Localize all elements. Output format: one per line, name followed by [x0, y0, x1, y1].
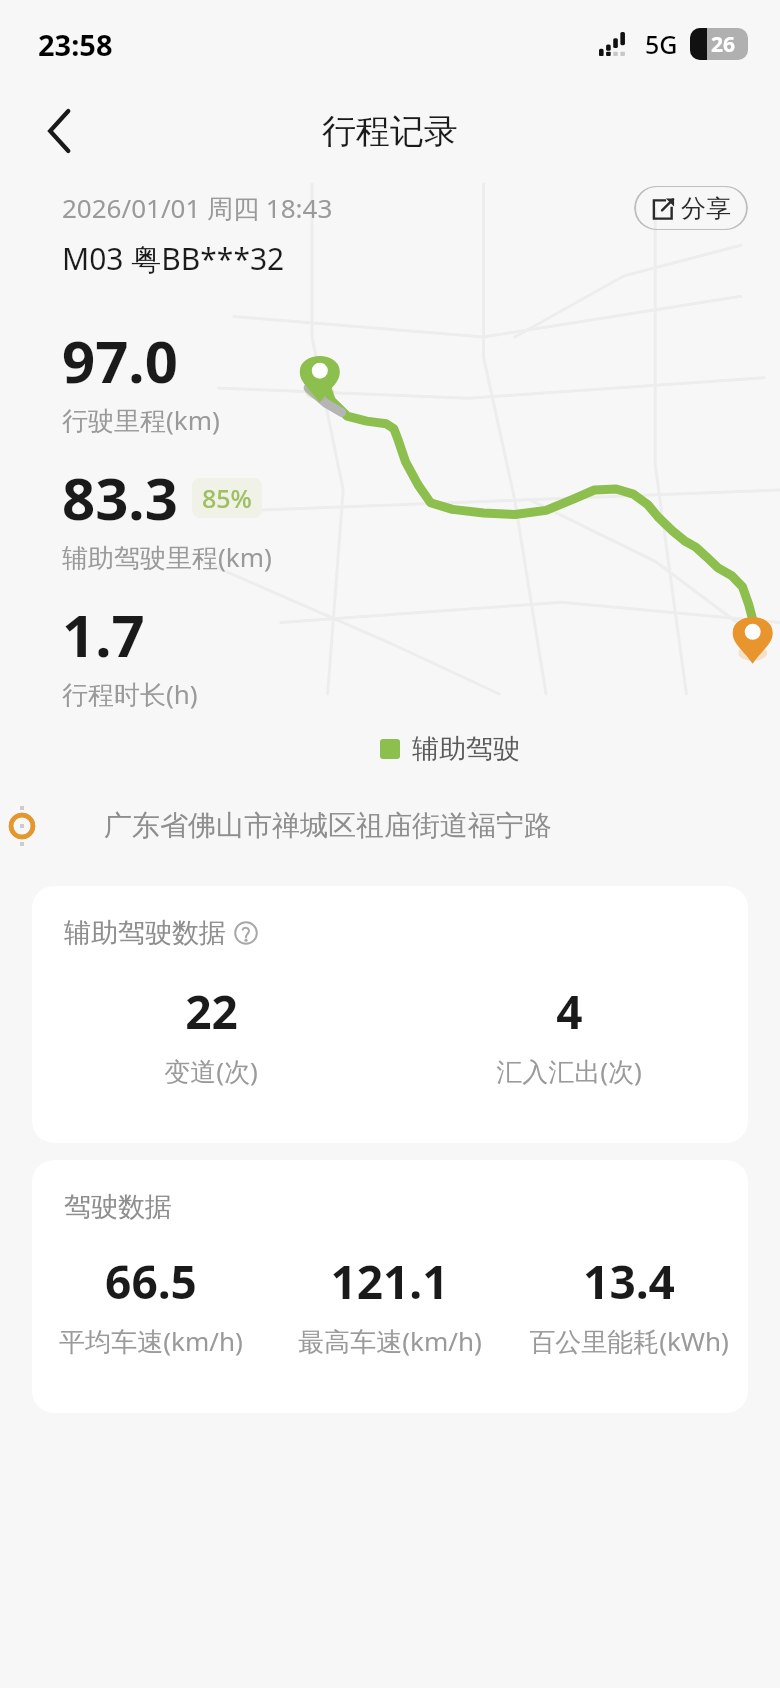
staticText: 行程记录 [322, 110, 458, 153]
staticText: 最高车速(km/h) [298, 1323, 482, 1359]
staticText: 66.5 [105, 1250, 197, 1313]
staticText: 驾驶数据 [64, 1190, 172, 1224]
staticText: 广东省佛山市禅城区祖庙街道福宁路 [104, 808, 552, 843]
staticText: 行驶里程(km) [62, 402, 220, 438]
staticText: M03 粤BB***32 [62, 238, 285, 279]
staticText: 23:58 [38, 25, 113, 64]
staticText: 分享 [681, 193, 731, 224]
staticText: 百公里能耗(kWh) [529, 1323, 729, 1359]
staticText: 5G [645, 27, 678, 61]
staticText: 2026/01/01 周四 18:43 [62, 190, 333, 226]
staticText: 辅助驾驶 [412, 732, 520, 766]
button[interactable]: Back [30, 101, 90, 161]
staticText: 85% [202, 481, 252, 515]
button[interactable]: 辅助驾驶数据 [32, 886, 748, 1143]
staticText: 汇入汇出(次) [496, 1053, 642, 1089]
staticText: 83.3 [62, 458, 178, 537]
staticText: 121.1 [330, 1250, 449, 1313]
staticText: 平均车速(km/h) [59, 1323, 243, 1359]
staticText: 变道(次) [164, 1053, 258, 1089]
staticText: 辅助驾驶数据 [64, 916, 226, 950]
staticText: 13.4 [583, 1250, 675, 1313]
button[interactable]: 驾驶数据 [32, 1160, 748, 1413]
staticText: 26 [711, 30, 736, 59]
staticText: 97.0 [62, 321, 178, 400]
staticText: 22 [185, 980, 238, 1043]
staticText: 辅助驾驶里程(km) [62, 539, 272, 575]
button[interactable]: 分享 [634, 186, 748, 230]
staticText: 4 [556, 980, 583, 1043]
staticText: 1.7 [62, 595, 145, 674]
staticText: 行程时长(h) [62, 676, 198, 712]
